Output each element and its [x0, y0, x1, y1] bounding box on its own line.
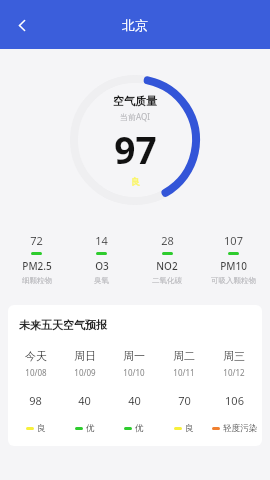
staticText: 细颗粒物: [22, 276, 52, 285]
staticText: 107: [224, 233, 243, 248]
staticText: 良: [37, 423, 46, 434]
staticText: 周二: [173, 349, 195, 363]
staticText: 10/10: [123, 367, 145, 378]
staticText: 98: [29, 393, 42, 408]
staticText: 可吸入颗粒物: [211, 276, 256, 285]
staticText: 未来五天空气预报: [19, 318, 107, 332]
staticText: 106: [225, 393, 244, 408]
staticText: 周三: [223, 349, 245, 363]
staticText: 今天: [25, 349, 47, 363]
staticText: 72: [30, 233, 43, 248]
staticText: 二氧化碳: [152, 276, 182, 285]
staticText: 周一: [123, 349, 145, 363]
staticText: 优: [135, 423, 144, 434]
staticText: 周日: [74, 349, 96, 363]
staticText: 14: [95, 233, 108, 248]
staticText: PM10: [220, 259, 247, 273]
button[interactable]: 72: [4, 231, 69, 287]
button[interactable]: 14: [69, 231, 134, 287]
staticText: 10/09: [74, 367, 96, 378]
button[interactable]: 未来五天空气预报: [8, 305, 262, 446]
staticText: NO2: [156, 259, 178, 273]
staticText: 良: [185, 423, 194, 434]
staticText: 轻度污染: [223, 423, 257, 434]
button[interactable]: 107: [200, 231, 266, 287]
staticText: 10/11: [173, 367, 195, 378]
button[interactable]: 周二: [159, 349, 209, 434]
staticText: 70: [178, 393, 191, 408]
staticText: 北京: [122, 17, 148, 33]
staticText: 臭氧: [94, 276, 109, 285]
staticText: 当前AQI: [120, 111, 150, 122]
button[interactable]: Back: [5, 8, 39, 42]
button[interactable]: 今天: [11, 349, 60, 434]
staticText: 97: [114, 124, 157, 174]
staticText: PM2.5: [22, 259, 52, 273]
button[interactable]: 28: [134, 231, 200, 287]
staticText: 优: [86, 423, 95, 434]
staticText: 良: [131, 176, 140, 187]
staticText: 空气质量: [113, 94, 157, 108]
staticText: 28: [161, 233, 174, 248]
staticText: 10/08: [25, 367, 47, 378]
staticText: 10/12: [223, 367, 245, 378]
staticText: O3: [95, 259, 109, 273]
staticText: 40: [78, 393, 91, 408]
button[interactable]: 周三: [209, 349, 259, 434]
staticText: 40: [128, 393, 141, 408]
button[interactable]: 周一: [109, 349, 159, 434]
button[interactable]: 周日: [60, 349, 109, 434]
